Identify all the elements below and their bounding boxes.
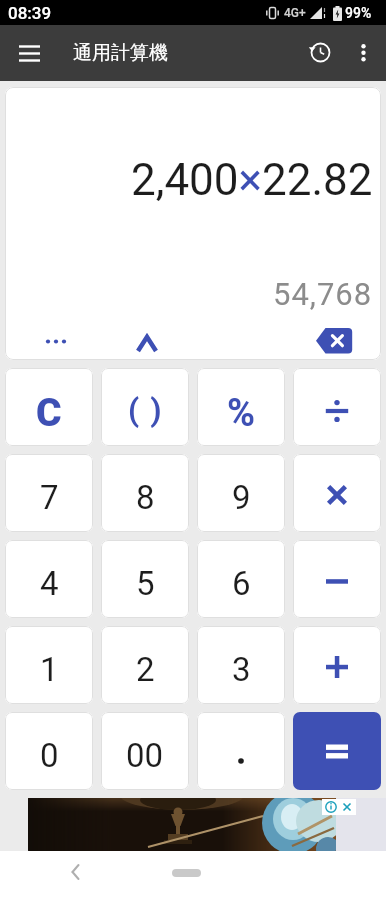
staticText: C (36, 390, 62, 436)
staticText: 9 (232, 478, 251, 517)
button[interactable]: 0 (5, 712, 93, 790)
staticText: 4 (40, 564, 59, 603)
button[interactable]: C (5, 368, 93, 446)
button[interactable] (293, 454, 381, 532)
button[interactable] (293, 540, 381, 618)
staticText: 5 (136, 564, 155, 603)
button[interactable] (36, 327, 76, 355)
button[interactable] (62, 858, 88, 886)
button[interactable]: 00 (101, 712, 189, 790)
button[interactable] (293, 712, 381, 790)
button[interactable]: ( ) (101, 368, 189, 446)
button[interactable]: % (197, 368, 285, 446)
button[interactable]: 1 (5, 626, 93, 704)
button[interactable]: 7 (5, 454, 93, 532)
button[interactable] (197, 712, 285, 790)
button[interactable] (308, 41, 332, 65)
button[interactable] (19, 45, 41, 62)
button[interactable]: 6 (197, 540, 285, 618)
button[interactable]: 4 (5, 540, 93, 618)
staticText: 1 (40, 650, 59, 689)
staticText: 2 (136, 650, 155, 689)
staticText: 4G+ (284, 6, 306, 20)
staticText: 0 (40, 736, 59, 775)
staticText: 00 (126, 736, 164, 775)
button[interactable]: 9 (197, 454, 285, 532)
button[interactable] (172, 869, 201, 877)
staticText: ( ) (128, 391, 163, 429)
button[interactable] (28, 798, 336, 851)
staticText: 6 (232, 564, 251, 603)
staticText: 3 (232, 650, 251, 689)
staticText: 7 (40, 478, 59, 517)
button[interactable]: 3 (197, 626, 285, 704)
button[interactable] (293, 626, 381, 704)
staticText: 54,768 (273, 276, 373, 312)
button[interactable]: 5 (101, 540, 189, 618)
staticText: 99% (345, 5, 372, 21)
button[interactable]: 8 (101, 454, 189, 532)
button[interactable]: 2 (101, 626, 189, 704)
staticText: % (227, 391, 256, 436)
staticText: 2,400×22.82 (131, 154, 373, 206)
staticText: 通用計算機 (73, 41, 168, 65)
staticText: 8 (136, 478, 155, 517)
button[interactable] (355, 42, 372, 64)
staticText: 08:39 (8, 3, 52, 23)
button[interactable] (310, 321, 358, 360)
button[interactable] (293, 368, 381, 446)
button[interactable] (132, 328, 162, 358)
